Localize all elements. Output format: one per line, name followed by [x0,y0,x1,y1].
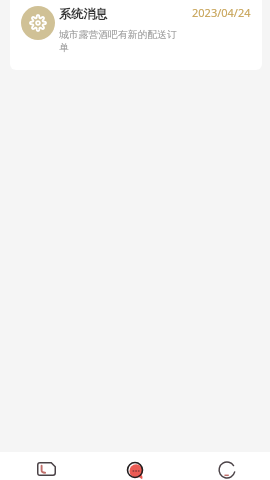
staticText: 2023/04/24 [192,5,251,20]
button[interactable]: Recents [0,452,90,480]
button[interactable]: 系统消息 [10,0,262,70]
button[interactable]: Back [180,452,270,480]
button[interactable]: Home [90,452,180,480]
staticText: 系统消息 [59,6,108,21]
staticText: 城市露营酒吧有新的配送订单 [59,29,181,54]
